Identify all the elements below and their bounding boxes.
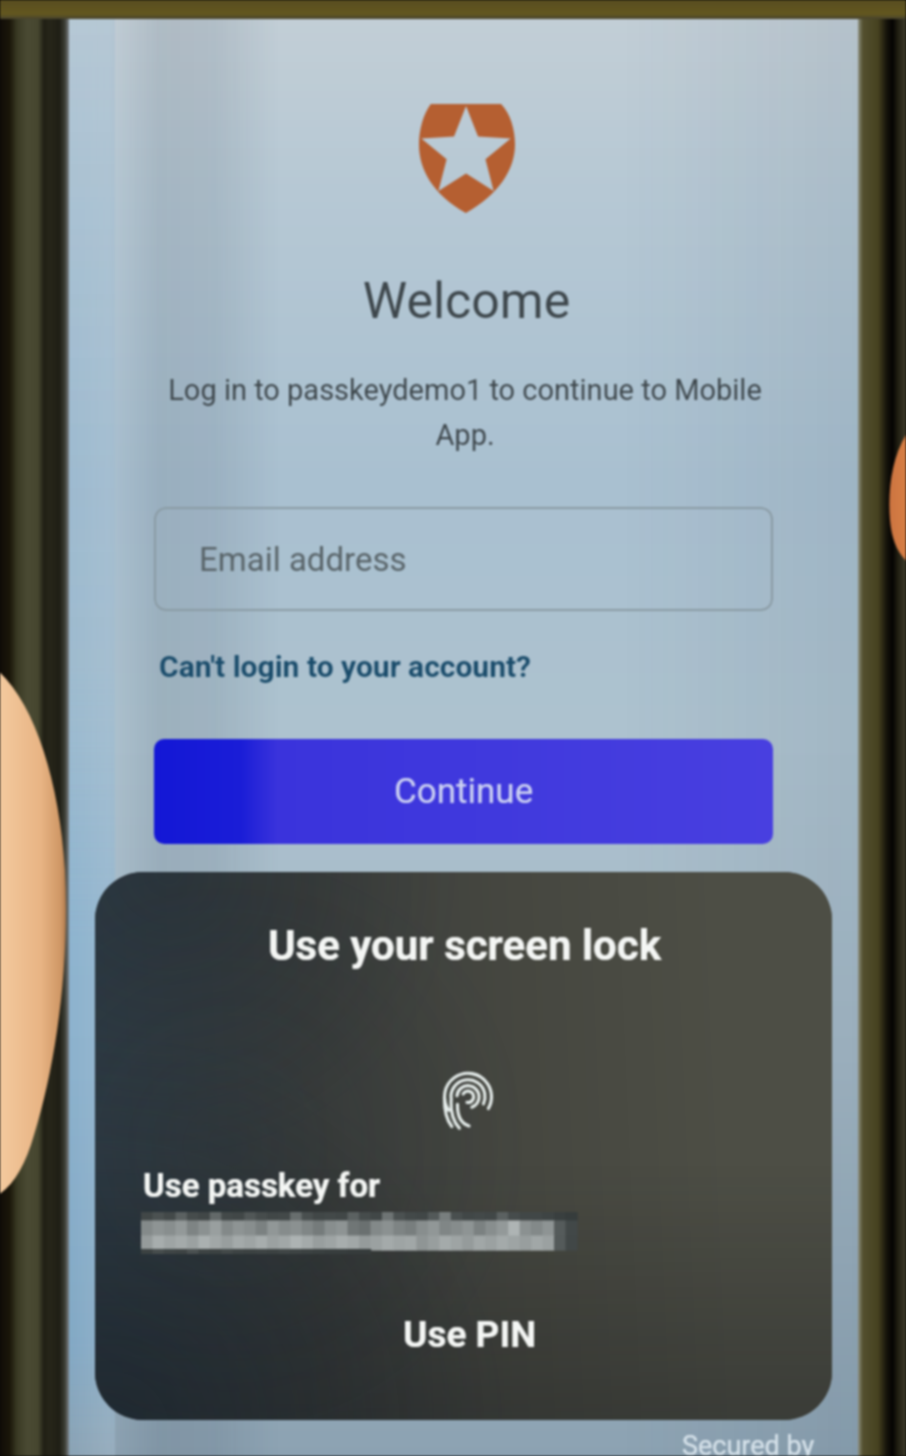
button[interactable]: Use PIN — [101, 1307, 832, 1361]
button[interactable]: Continue — [154, 739, 773, 844]
other: Fingerprint — [441, 1073, 495, 1127]
button[interactable]: Email address — [154, 507, 773, 611]
staticText: Secured by — [682, 1430, 815, 1456]
staticText: Log in to passkeydemo1 to continue to Mo… — [145, 373, 785, 452]
button[interactable]: Can't login to your account? — [159, 649, 532, 684]
staticText: Email address — [199, 540, 407, 579]
staticText: Use passkey for — [143, 1166, 381, 1205]
staticText: Welcome — [72, 272, 861, 331]
staticText: Use PIN — [403, 1313, 537, 1356]
staticText: Use your screen lock — [96, 921, 832, 970]
staticText: Continue — [394, 771, 534, 812]
staticText: Can't login to your account? — [159, 649, 532, 684]
